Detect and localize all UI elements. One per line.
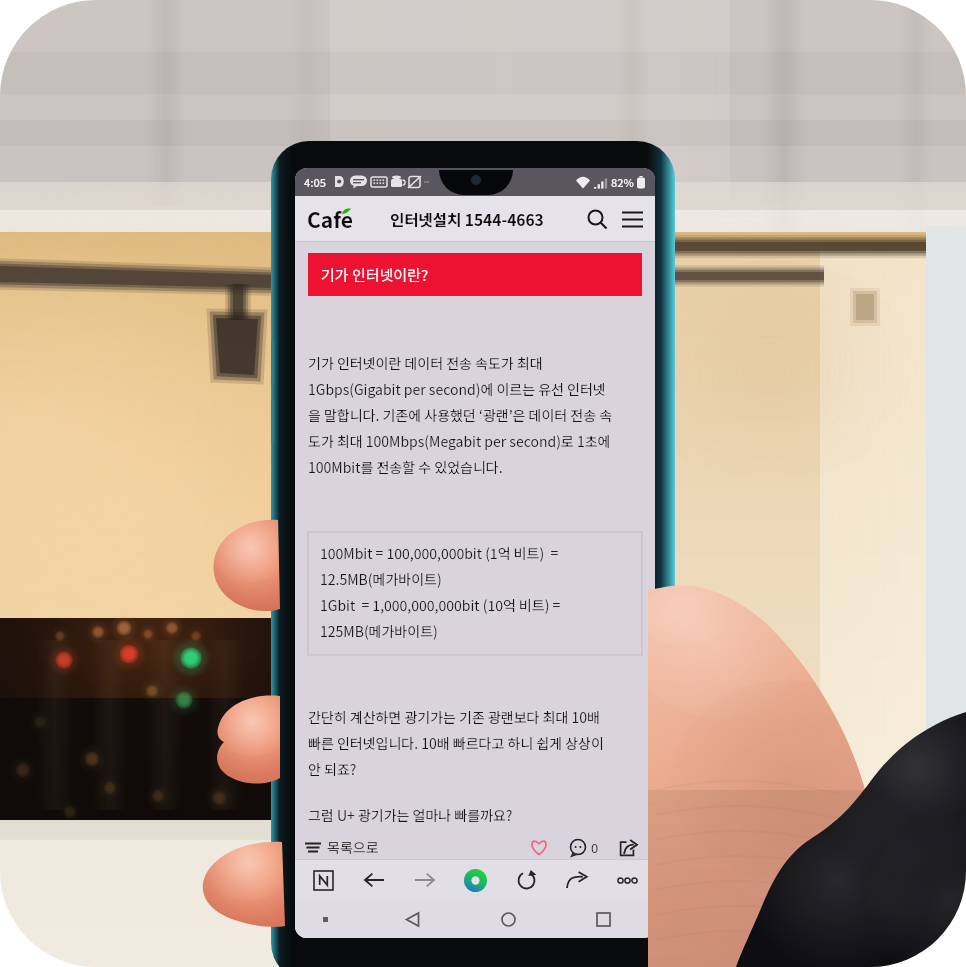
staticText: 4:05 bbox=[304, 174, 327, 190]
button[interactable]: Reload bbox=[512, 866, 540, 894]
staticText: 간단히 계산하면 광기가는 기존 광랜보다 최대 10배 빠른 인터넷입니다. … bbox=[308, 707, 604, 779]
staticText: 목록으로 bbox=[327, 837, 379, 857]
staticText: 0 bbox=[591, 838, 599, 857]
button[interactable]: Like bbox=[526, 835, 552, 859]
staticText: 기가 인터넷이란? bbox=[321, 264, 429, 286]
button[interactable]: Home bbox=[461, 866, 489, 894]
staticText: 기가 인터넷이란 데이터 전송 속도가 최대 1Gbps(Gigabit per… bbox=[308, 353, 613, 477]
button[interactable]: Recents bbox=[587, 903, 619, 935]
button[interactable]: Menu bbox=[617, 204, 647, 234]
button[interactable]: Back bbox=[360, 866, 388, 894]
staticText: 인터넷설치 1544-4663 bbox=[390, 208, 544, 230]
button[interactable]: Indicator bbox=[317, 911, 333, 927]
button[interactable]: Search bbox=[582, 204, 612, 234]
staticText: Cafe bbox=[307, 204, 353, 234]
button[interactable]: 0 bbox=[570, 838, 599, 857]
button[interactable]: Naver bbox=[309, 866, 337, 894]
button[interactable]: Forward bbox=[410, 866, 438, 894]
button[interactable]: More bbox=[613, 866, 641, 894]
staticText: 그럼 U+ 광기가는 얼마나 빠를까요? bbox=[308, 805, 513, 825]
staticText: 100Mbit = 100,000,000bit (1억 비트) = 12.5M… bbox=[320, 543, 561, 641]
button[interactable]: Share bbox=[615, 835, 641, 859]
button[interactable]: Cafe home bbox=[307, 204, 353, 234]
button[interactable]: Share page bbox=[562, 866, 590, 894]
staticText: 82% bbox=[611, 174, 634, 190]
button[interactable]: 목록으로 bbox=[305, 837, 385, 857]
button[interactable]: Back bbox=[396, 903, 428, 935]
button[interactable]: Home bbox=[492, 903, 524, 935]
